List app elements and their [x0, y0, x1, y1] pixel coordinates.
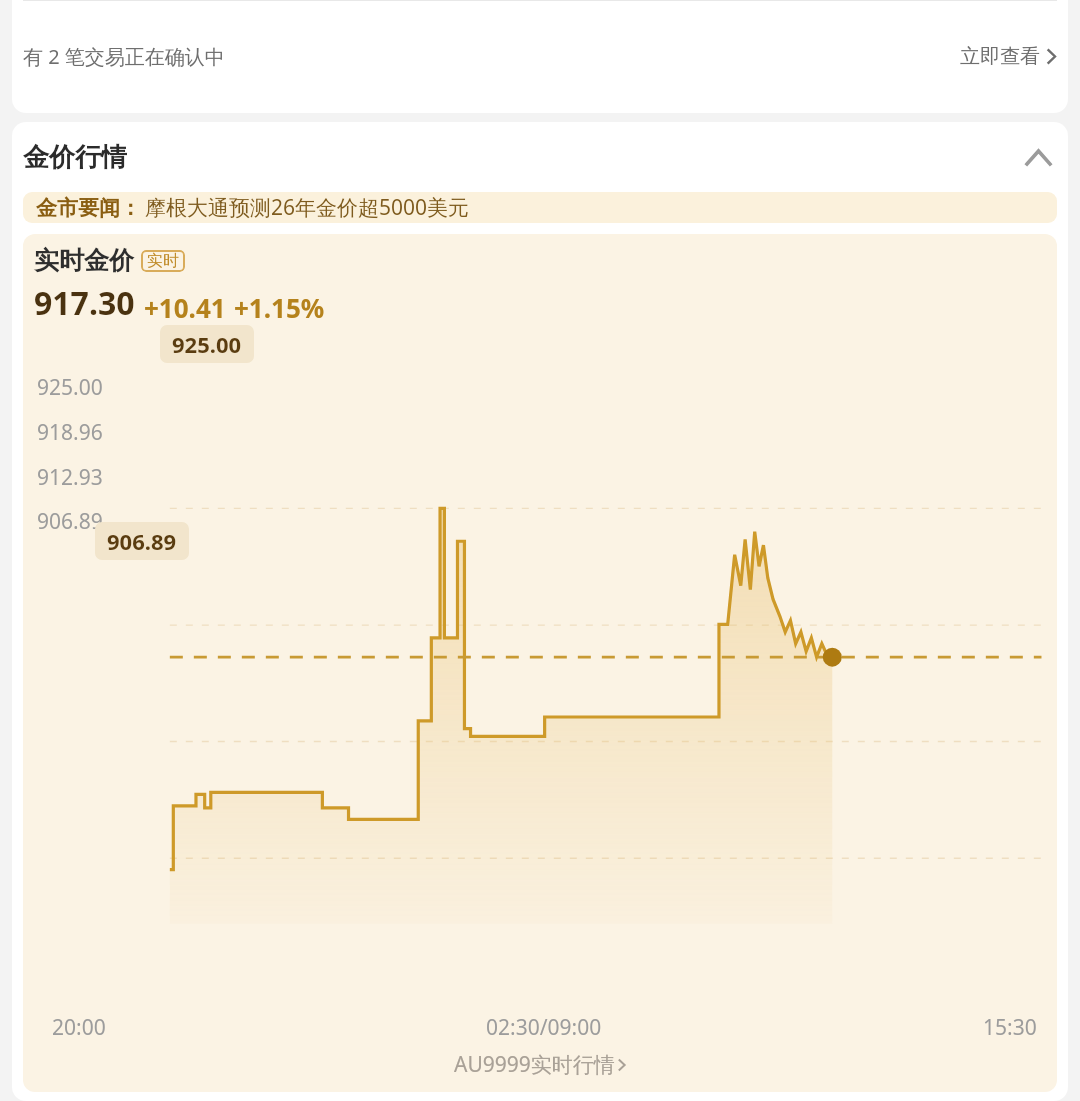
staticText: 实时金价	[34, 245, 134, 276]
staticText: 金价行情	[23, 141, 127, 174]
staticText: 立即查看	[960, 44, 1040, 69]
staticText: 925.00	[172, 329, 242, 359]
button[interactable]: 有 2 笔交易正在确认中	[12, 0, 1068, 113]
button[interactable]: 金市要闻：	[23, 192, 1057, 223]
staticText: 912.93	[37, 463, 103, 492]
staticText: +10.41	[144, 290, 226, 325]
staticText: AU9999实时行情	[454, 1050, 615, 1079]
staticText: 917.30	[34, 281, 135, 325]
staticText: 906.89	[107, 526, 177, 556]
staticText: 918.96	[37, 418, 103, 447]
staticText: 906.89	[37, 507, 103, 536]
button[interactable]: AU9999实时行情	[23, 1042, 1057, 1086]
staticText: 925.00	[37, 373, 103, 402]
staticText: 有 2 笔交易正在确认中	[23, 43, 225, 70]
staticText: 实时	[147, 251, 179, 271]
other: Collapse	[1021, 140, 1055, 174]
staticText: 20:00	[52, 1013, 106, 1042]
button[interactable]: 金价行情	[12, 122, 1068, 192]
staticText: 02:30/09:00	[486, 1013, 602, 1042]
staticText: 摩根大通预测26年金价超5000美元	[145, 193, 470, 222]
staticText: 15:30	[983, 1013, 1037, 1042]
staticText: 金市要闻：	[36, 195, 141, 221]
staticText: +1.15%	[234, 290, 325, 325]
